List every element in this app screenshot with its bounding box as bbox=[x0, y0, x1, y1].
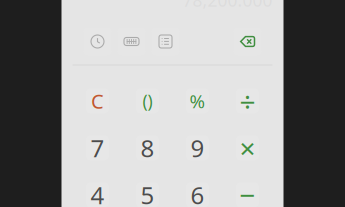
staticText: − bbox=[239, 176, 255, 207]
button[interactable]: Delete bbox=[233, 27, 261, 55]
button[interactable]: × bbox=[222, 124, 272, 171]
button[interactable]: 5 bbox=[122, 171, 172, 207]
button[interactable]: 9 bbox=[172, 124, 222, 171]
staticText: 4 bbox=[90, 179, 104, 207]
button[interactable]: − bbox=[222, 171, 272, 207]
button[interactable]: Keyboard bbox=[117, 27, 145, 55]
button[interactable]: % bbox=[172, 77, 222, 124]
button[interactable]: History bbox=[83, 27, 111, 55]
button[interactable]: 7 bbox=[72, 124, 122, 171]
staticText: 9 bbox=[190, 132, 204, 164]
staticText: C bbox=[91, 88, 104, 114]
button[interactable]: ÷ bbox=[222, 77, 272, 124]
staticText: % bbox=[189, 89, 205, 113]
staticText: ÷ bbox=[239, 82, 255, 120]
button[interactable]: 6 bbox=[172, 171, 222, 207]
staticText: 5 bbox=[140, 179, 154, 207]
button[interactable]: 4 bbox=[72, 171, 122, 207]
button[interactable]: C bbox=[72, 77, 122, 124]
staticText: × bbox=[239, 129, 255, 167]
staticText: () bbox=[142, 89, 152, 112]
staticText: 8 bbox=[140, 132, 154, 164]
staticText: 7 bbox=[90, 132, 104, 164]
staticText: 6 bbox=[190, 179, 204, 207]
button[interactable]: () bbox=[122, 77, 172, 124]
button[interactable]: Unit converter bbox=[151, 27, 179, 55]
button[interactable]: 8 bbox=[122, 124, 172, 171]
